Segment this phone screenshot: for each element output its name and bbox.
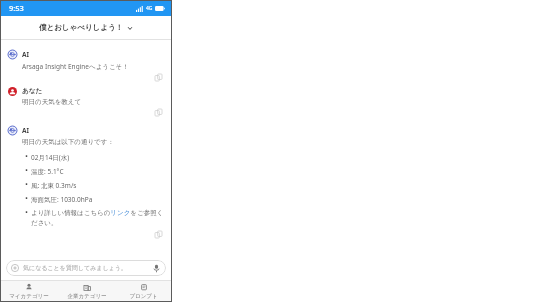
staticText: 僕とおしゃべりしよう！ [39, 23, 124, 32]
button[interactable]: コピー [152, 106, 164, 118]
staticText: 4G [146, 5, 153, 12]
button[interactable]: コピー [152, 71, 164, 83]
staticText: 企業カテゴリー [67, 293, 107, 300]
staticText: 気になることを質問してみましょう。 [23, 264, 151, 272]
button[interactable]: マイカテゴリー [0, 281, 58, 302]
staticText: 明日の天気を教えて [22, 98, 82, 106]
button[interactable]: コピー [152, 228, 164, 240]
staticText: AI [22, 50, 30, 59]
staticText: Arsaga Insight Engineへようこそ！ [22, 62, 129, 71]
button[interactable]: 音声入力 [151, 263, 161, 273]
staticText: あなた [22, 87, 42, 95]
staticText: 風: 北東 0.3m/s [31, 181, 77, 190]
staticText: 海面気圧: 1030.0hPa [31, 195, 93, 204]
staticText: 9:53 [9, 3, 24, 13]
button[interactable]: 添付を追加 [6, 260, 166, 276]
staticText: 温度: 5.1°C [31, 167, 64, 176]
staticText: より詳しい情報はこちらのリンクをご参照ください。 [31, 209, 164, 227]
button[interactable]: 企業カテゴリー [58, 281, 115, 302]
staticText: 02月14日(水) [31, 153, 70, 162]
button[interactable]: プロンプト [115, 281, 172, 302]
staticText: 明日の天気は以下の通りです： [22, 138, 114, 146]
staticText: プロンプト [129, 293, 158, 300]
staticText: マイカテゴリー [9, 293, 49, 300]
staticText: AI [22, 126, 30, 135]
button[interactable]: 僕とおしゃべりしよう！ [0, 16, 172, 39]
button[interactable]: 添付を追加 [11, 264, 19, 272]
